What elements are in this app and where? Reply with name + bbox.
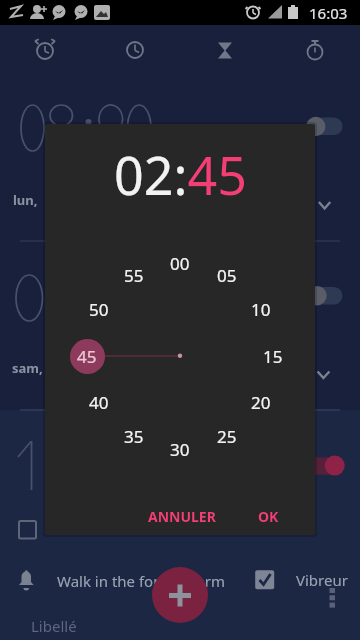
staticText: 40: [89, 391, 109, 414]
button[interactable]: 40: [77, 389, 121, 415]
button[interactable]: 45: [65, 343, 109, 369]
button[interactable]: [270, 25, 360, 77]
staticText: sam,: [12, 359, 47, 377]
button[interactable]: [245, 560, 360, 600]
staticText: 20: [251, 391, 271, 414]
staticText: 00: [170, 252, 190, 275]
button[interactable]: [303, 281, 347, 311]
staticText: Walk in the forest alarm: [57, 571, 225, 591]
staticText: 15: [263, 345, 283, 368]
staticText: 02:45: [114, 139, 247, 209]
button[interactable]: [303, 451, 347, 481]
button[interactable]: 10: [239, 296, 283, 322]
staticText: 16:03: [309, 3, 348, 23]
button[interactable]: 00: [158, 250, 202, 276]
staticText: Vibreur: [296, 570, 348, 590]
button[interactable]: OK: [246, 500, 290, 532]
staticText: OK: [258, 507, 279, 526]
staticText: 10: [251, 298, 271, 321]
staticText: Libellé: [31, 616, 77, 636]
button[interactable]: 30: [158, 436, 202, 462]
button[interactable]: 50: [77, 296, 121, 322]
staticText: ANNULER: [148, 507, 216, 526]
staticText: 50: [89, 298, 109, 321]
staticText: 55: [124, 264, 144, 287]
button[interactable]: [0, 605, 360, 640]
button[interactable]: 15: [251, 343, 295, 369]
button[interactable]: 35: [112, 423, 156, 449]
button[interactable]: ANNULER: [138, 500, 226, 532]
button[interactable]: [90, 25, 180, 77]
staticText: 30: [170, 438, 190, 461]
staticText: 45: [77, 345, 97, 368]
staticText: lun,: [13, 191, 41, 209]
button[interactable]: 25: [205, 423, 249, 449]
button[interactable]: [0, 560, 245, 600]
staticText: 35: [124, 425, 144, 448]
button[interactable]: [0, 25, 90, 77]
button[interactable]: 55: [112, 262, 156, 288]
button[interactable]: 05: [205, 262, 249, 288]
staticText: 25: [217, 425, 237, 448]
button[interactable]: [303, 112, 347, 142]
button[interactable]: 20: [239, 389, 283, 415]
button[interactable]: [152, 567, 208, 623]
button[interactable]: [180, 25, 270, 77]
staticText: 05: [217, 264, 237, 287]
